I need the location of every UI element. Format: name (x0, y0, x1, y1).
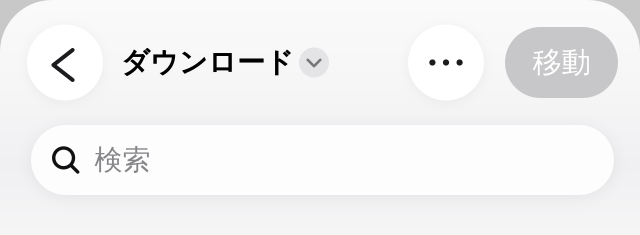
button[interactable]: 移動 (505, 27, 618, 98)
button[interactable]: その他 (408, 24, 484, 100)
button[interactable]: 検索 (31, 125, 614, 195)
button[interactable]: 戻る (27, 24, 103, 100)
staticText: ダウンロード (121, 45, 294, 80)
staticText: 移動 (532, 44, 590, 80)
staticText: 検索 (94, 143, 150, 177)
button[interactable]: ダウンロード (103, 31, 329, 94)
